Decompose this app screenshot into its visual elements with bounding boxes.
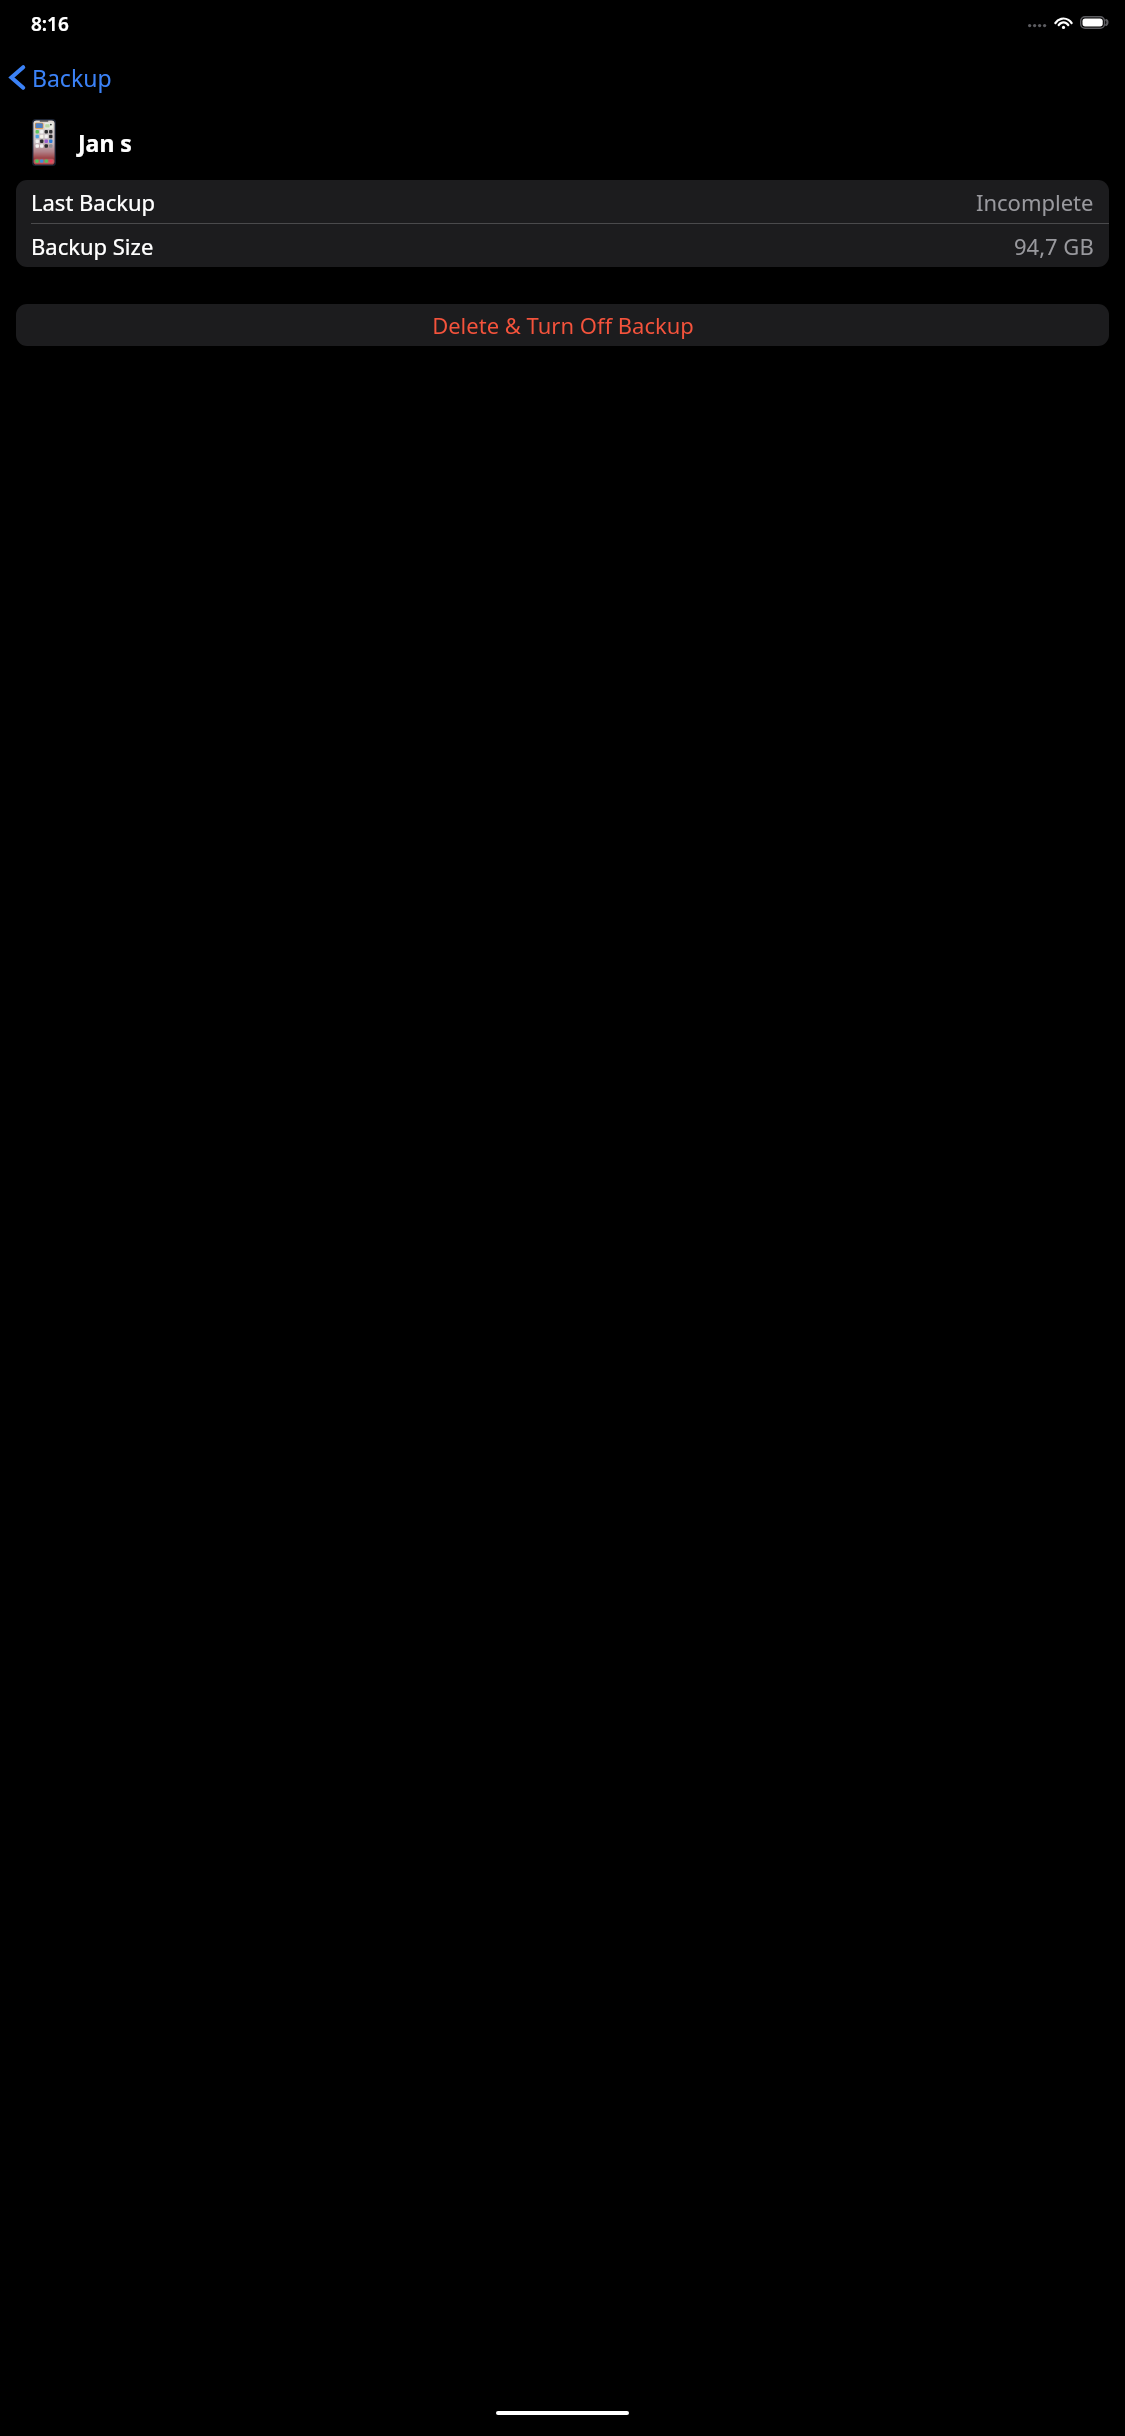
staticText: 8:16	[31, 11, 69, 37]
staticText: Backup Size	[31, 231, 154, 261]
button[interactable]: Backup Size	[16, 224, 1109, 267]
button[interactable]: Back to Backup	[3, 60, 124, 95]
staticText: 94,7 GB	[1014, 231, 1094, 261]
staticText: Jan s	[78, 127, 132, 158]
staticText: Last Backup	[31, 187, 156, 217]
button[interactable]: Jan s	[0, 119, 1125, 166]
button[interactable]: Last Backup	[16, 180, 1109, 223]
staticText: Backup	[32, 62, 112, 93]
staticText: Incomplete	[976, 187, 1094, 217]
button[interactable]: Delete & Turn Off Backup	[16, 304, 1109, 346]
staticText: Delete & Turn Off Backup	[432, 310, 694, 340]
